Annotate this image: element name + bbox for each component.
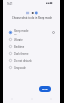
button[interactable]: Bedtime [3,43,60,50]
staticText: Bedtime [14,45,25,49]
staticText: Choose what to do in Sleep mode [12,16,52,19]
button[interactable]: Sleep mode [3,29,60,36]
staticText: 9:41 [7,2,13,6]
button[interactable]: Grayscale [3,64,60,71]
staticText: Do not disturb [14,59,32,63]
button[interactable]: More information [52,31,55,34]
button[interactable]: Dark theme [3,50,60,57]
staticText: Done [42,88,48,91]
staticText: Grayscale [14,66,26,70]
staticText: Vibrate [14,38,23,42]
button[interactable]: Vibrate [3,36,60,43]
button[interactable]: Done [39,86,51,92]
staticText: On [14,33,17,36]
staticText: Sleep mode [14,29,29,33]
button[interactable]: Do not disturb [3,57,60,64]
staticText: Dark theme [14,52,29,56]
